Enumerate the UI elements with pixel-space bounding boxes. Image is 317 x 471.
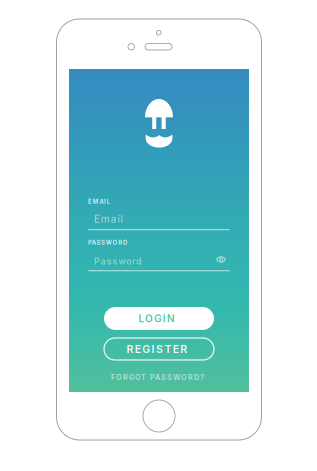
button[interactable]: FORGOT PASSWORD?	[112, 373, 205, 382]
staticText: FORGOT PASSWORD?	[111, 373, 207, 382]
button[interactable]: LOGIN	[104, 307, 214, 330]
staticText: Email	[94, 213, 126, 225]
staticText: PASSWORD	[88, 239, 130, 246]
staticText: Password	[94, 256, 144, 266]
staticText: REGISTER	[126, 342, 192, 355]
staticText: LOGIN	[138, 312, 179, 325]
staticText: EMAIL	[88, 198, 112, 205]
button[interactable]: REGISTER	[104, 338, 214, 360]
